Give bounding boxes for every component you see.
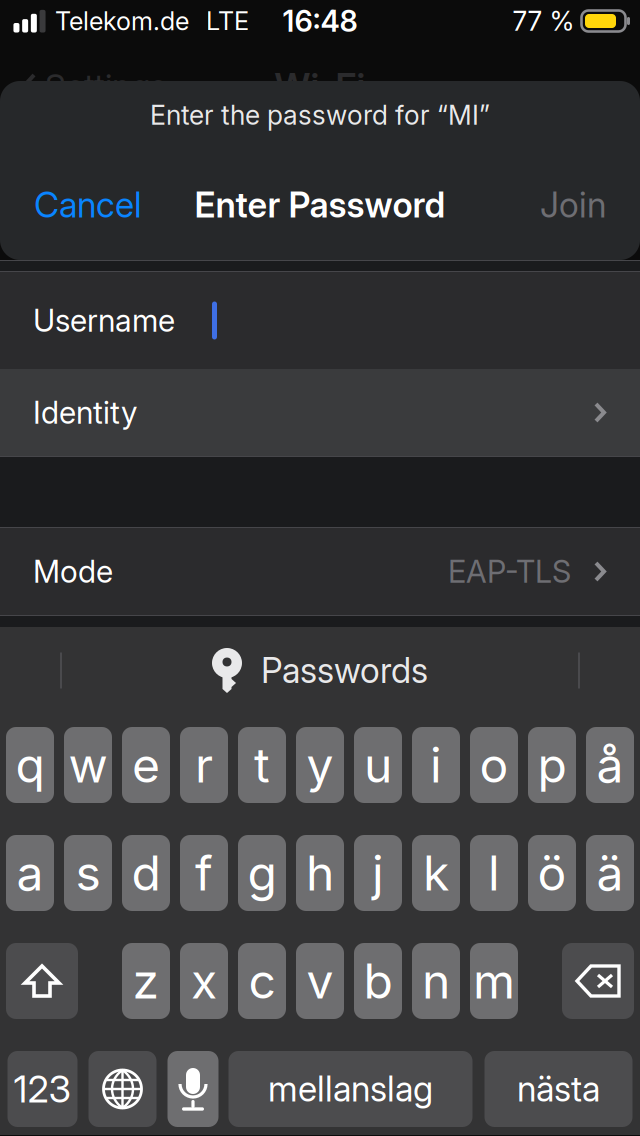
staticText: y: [306, 736, 333, 794]
staticText: Join: [540, 184, 606, 226]
staticText: Mode: [33, 553, 113, 590]
staticText: Cancel: [34, 184, 142, 226]
staticText: p: [537, 736, 566, 794]
staticText: Enter the password for “MI”: [150, 99, 490, 131]
staticText: EAP-TLS: [448, 553, 571, 590]
staticText: Username: [33, 302, 175, 339]
staticText: ö: [537, 844, 566, 902]
staticText: s: [75, 844, 100, 902]
staticText: Passwords: [261, 649, 428, 691]
staticText: j: [372, 844, 384, 902]
button[interactable]: e: [122, 727, 170, 803]
staticText: n: [422, 952, 450, 1010]
button[interactable]: ö: [528, 835, 576, 911]
button[interactable]: n: [412, 943, 460, 1019]
button[interactable]: ä: [586, 835, 634, 911]
button[interactable]: r: [180, 727, 228, 803]
button[interactable]: m: [470, 943, 518, 1019]
button[interactable]: q: [6, 727, 54, 803]
staticText: nästa: [517, 1068, 600, 1110]
staticText: t: [254, 736, 270, 794]
staticText: q: [15, 736, 44, 794]
button[interactable]: i: [412, 727, 460, 803]
staticText: mellanslag: [268, 1068, 433, 1110]
button[interactable]: z: [122, 943, 170, 1019]
button[interactable]: v: [296, 943, 344, 1019]
staticText: f: [195, 844, 213, 902]
staticText: 77 %: [512, 5, 574, 37]
staticText: i: [430, 736, 442, 794]
staticText: k: [423, 844, 449, 902]
button[interactable]: c: [238, 943, 286, 1019]
staticText: m: [473, 952, 515, 1010]
button[interactable]: Delete: [562, 943, 634, 1019]
staticText: x: [191, 952, 217, 1010]
button[interactable]: å: [586, 727, 634, 803]
button[interactable]: Join: [520, 177, 640, 233]
button[interactable]: w: [64, 727, 112, 803]
button[interactable]: Next keyboard: [88, 1051, 156, 1127]
button[interactable]: p: [528, 727, 576, 803]
staticText: 123: [13, 1066, 71, 1112]
staticText: l: [488, 844, 500, 902]
button[interactable]: mellanslag: [228, 1051, 472, 1127]
button[interactable]: j: [354, 835, 402, 911]
staticText: Enter Password: [194, 184, 445, 226]
staticText: a: [16, 844, 43, 902]
button[interactable]: t: [238, 727, 286, 803]
button[interactable]: x: [180, 943, 228, 1019]
button[interactable]: a: [6, 835, 54, 911]
button[interactable]: nästa: [484, 1051, 632, 1127]
staticText: h: [306, 844, 334, 902]
staticText: ä: [596, 844, 623, 902]
staticText: LTE: [206, 6, 249, 36]
button[interactable]: Passwords: [212, 639, 428, 701]
staticText: o: [479, 736, 508, 794]
button[interactable]: s: [64, 835, 112, 911]
staticText: u: [364, 736, 392, 794]
staticText: b: [363, 952, 392, 1010]
button[interactable]: d: [122, 835, 170, 911]
button[interactable]: f: [180, 835, 228, 911]
staticText: v: [306, 952, 333, 1010]
button[interactable]: u: [354, 727, 402, 803]
button[interactable]: 123: [7, 1051, 77, 1127]
staticText: Wi-Fi: [274, 64, 365, 108]
button[interactable]: Shift: [6, 943, 78, 1019]
button[interactable]: Identity: [0, 369, 640, 456]
staticText: r: [195, 736, 213, 794]
staticText: Settings: [45, 66, 167, 106]
button[interactable]: Settings: [0, 64, 167, 108]
button[interactable]: o: [470, 727, 518, 803]
staticText: å: [596, 736, 623, 794]
staticText: c: [248, 952, 275, 1010]
button[interactable]: Cancel: [0, 177, 162, 233]
staticText: z: [132, 952, 159, 1010]
staticText: Identity: [33, 394, 137, 431]
staticText: d: [131, 844, 160, 902]
button[interactable]: b: [354, 943, 402, 1019]
button[interactable]: g: [238, 835, 286, 911]
staticText: e: [132, 736, 160, 794]
button[interactable]: Dictation: [167, 1051, 218, 1127]
staticText: w: [68, 736, 107, 794]
staticText: Telekom.de: [55, 6, 189, 36]
button[interactable]: Mode: [0, 528, 640, 615]
staticText: g: [247, 844, 276, 902]
button[interactable]: y: [296, 727, 344, 803]
staticText: 16:48: [282, 3, 357, 39]
button[interactable]: l: [470, 835, 518, 911]
button[interactable]: k: [412, 835, 460, 911]
button[interactable]: h: [296, 835, 344, 911]
